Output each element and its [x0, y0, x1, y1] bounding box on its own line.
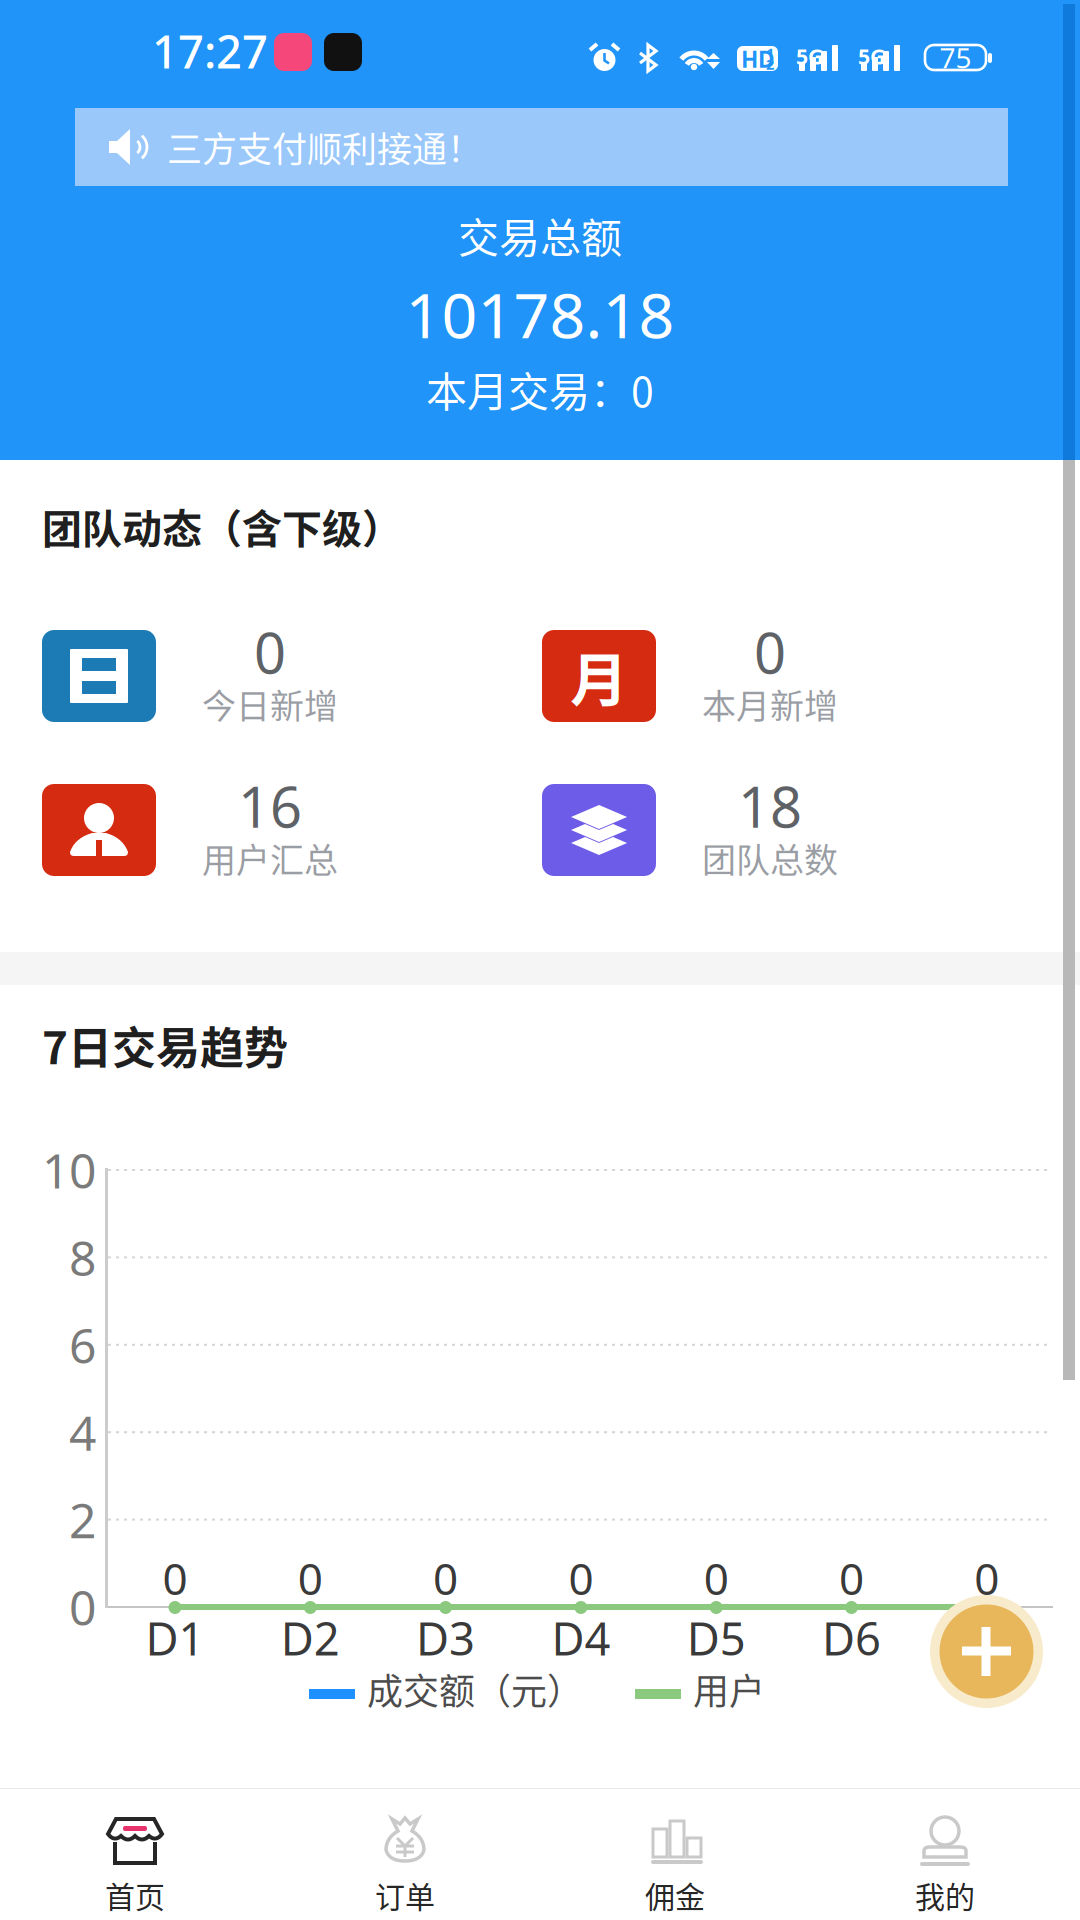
staticText: 成交额（元） [367, 1663, 583, 1715]
staticText: 5G [796, 42, 823, 70]
staticText: 交易总额 [458, 205, 622, 265]
staticText: 0 [162, 1549, 187, 1607]
button[interactable]: 0 [42, 630, 442, 722]
staticText: 0 [974, 1549, 999, 1607]
staticText: 0 [433, 1549, 458, 1607]
button[interactable]: Add [930, 1595, 1043, 1708]
staticText: D6 [822, 1608, 881, 1668]
staticText: D5 [687, 1608, 746, 1668]
staticText: 7日交易趋势 [42, 1013, 288, 1077]
button[interactable]: 16 [42, 784, 442, 876]
staticText: 0 [754, 615, 786, 689]
staticText: 16 [238, 769, 302, 843]
staticText: 订单 [375, 1873, 435, 1917]
staticText: 6 [69, 1313, 96, 1377]
button[interactable]: 我的 [810, 1790, 1080, 1920]
staticText: 佣金 [645, 1873, 705, 1917]
staticText: 0 [254, 615, 286, 689]
staticText: 2 [766, 54, 774, 74]
staticText: 团队动态（含下级） [42, 497, 402, 555]
button[interactable]: 订单 [270, 1790, 540, 1920]
staticText: 0 [704, 1549, 729, 1607]
staticText: D3 [416, 1608, 475, 1668]
staticText: 4 [69, 1400, 96, 1464]
staticText: 18 [738, 769, 802, 843]
staticText: D1 [145, 1608, 204, 1668]
staticText: 10 [42, 1138, 96, 1202]
staticText: 团队总数 [702, 833, 838, 883]
staticText: D2 [281, 1608, 340, 1668]
staticText: 8 [69, 1225, 96, 1289]
staticText: 本月交易：0 [426, 359, 654, 419]
staticText: 0 [298, 1549, 323, 1607]
staticText: 10178.18 [405, 272, 674, 356]
button[interactable]: 佣金 [540, 1790, 810, 1920]
button[interactable]: 月 [542, 630, 942, 722]
staticText: 首页 [105, 1873, 165, 1917]
staticText: D7 [957, 1608, 1016, 1668]
staticText: D4 [551, 1608, 610, 1668]
staticText: 今日新增 [202, 679, 338, 729]
staticText: 5G [858, 42, 885, 70]
staticText: 0 [69, 1575, 96, 1639]
staticText: 17:27 [152, 21, 268, 81]
staticText: 75 [939, 39, 971, 76]
staticText: 2 [69, 1488, 96, 1551]
staticText: HD [741, 44, 775, 74]
staticText: 我的 [915, 1873, 975, 1917]
staticText: 用户汇总 [202, 833, 338, 883]
staticText: 本月新增 [702, 679, 838, 729]
staticText: 1 [766, 43, 774, 63]
staticText: 0 [568, 1549, 593, 1607]
button[interactable]: 18 [542, 784, 942, 876]
staticText: 月 [570, 634, 628, 718]
staticText: 0 [839, 1549, 864, 1607]
staticText: 三方支付顺利接通！ [167, 122, 482, 172]
button[interactable]: 首页 [0, 1790, 270, 1920]
staticText: 用户 [693, 1663, 765, 1715]
